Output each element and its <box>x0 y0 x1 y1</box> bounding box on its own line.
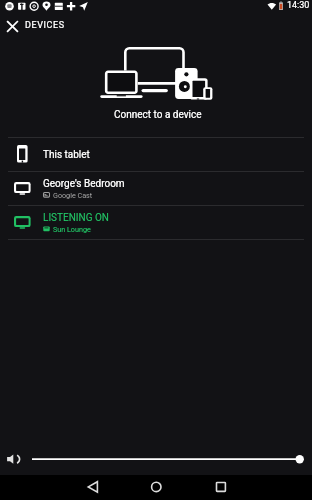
staticText: This tablet <box>43 149 90 161</box>
staticText: George's Bedroom <box>43 178 125 190</box>
staticText: Sun Lounge <box>53 225 91 233</box>
button[interactable]: George's Bedroom <box>0 172 312 205</box>
button[interactable]: Close <box>0 14 24 38</box>
staticText: Connect to a device <box>114 109 202 121</box>
staticText: LISTENING ON <box>43 212 109 224</box>
button[interactable]: Home <box>125 475 187 500</box>
button[interactable]: LISTENING ON <box>0 206 312 239</box>
staticText: Google Cast <box>53 191 93 199</box>
button[interactable]: Back <box>32 475 94 500</box>
button[interactable]: This tablet <box>0 138 312 171</box>
staticText: DEVICES <box>25 20 65 31</box>
button[interactable]: Recent apps <box>219 475 281 500</box>
staticText: 14:30 <box>287 0 310 11</box>
